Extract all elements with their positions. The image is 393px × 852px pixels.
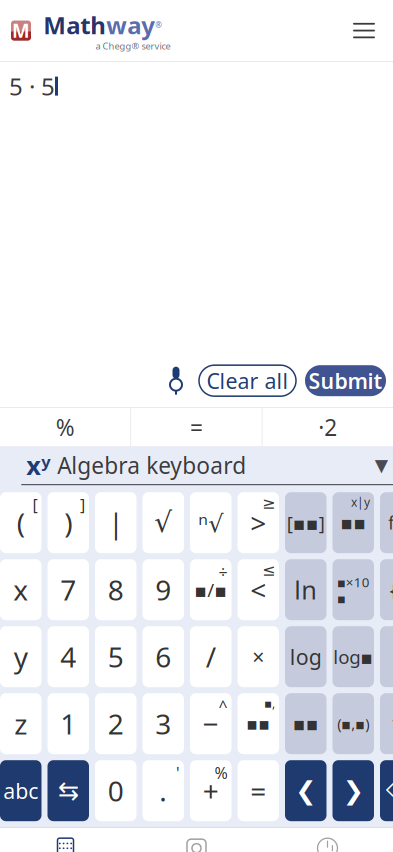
- button[interactable]: Letters: [0, 760, 41, 821]
- staticText: ln: [294, 573, 317, 606]
- button[interactable]: Square root: [142, 492, 184, 553]
- button[interactable]: Fraction: [190, 559, 231, 620]
- staticText: ▪/▪: [194, 577, 227, 602]
- staticText: .: [159, 772, 167, 809]
- staticText: /: [206, 638, 216, 675]
- staticText: Clear all: [206, 366, 288, 395]
- staticText: ®: [155, 19, 162, 30]
- button[interactable]: Delete: [380, 760, 393, 821]
- button[interactable]: 9: [142, 559, 184, 620]
- staticText: ': [176, 762, 180, 783]
- button[interactable]: z: [0, 693, 41, 754]
- button[interactable]: Pi: [380, 693, 393, 754]
- button[interactable]: Less than: [237, 559, 279, 620]
- staticText: 6: [155, 638, 171, 675]
- staticText: ▪×10▪: [337, 573, 370, 606]
- button[interactable]: 7: [47, 559, 89, 620]
- button[interactable]: Parenthesis close: [47, 492, 89, 553]
- button[interactable]: 8: [95, 559, 136, 620]
- button[interactable]: Ordered pair: [332, 693, 374, 754]
- button[interactable]: System of equations: [380, 559, 393, 620]
- button[interactable]: 6: [142, 626, 184, 687]
- staticText: 4: [60, 638, 76, 675]
- button[interactable]: Minus: [190, 693, 231, 754]
- button[interactable]: y: [0, 626, 41, 687]
- button[interactable]: 2: [95, 693, 136, 754]
- button[interactable]: Move right: [332, 760, 374, 821]
- staticText: Algebra keyboard: [57, 450, 246, 480]
- button[interactable]: Decimal point: [142, 760, 184, 821]
- button[interactable]: Scientific notation: [332, 559, 374, 620]
- button[interactable]: Intersection: [380, 626, 393, 687]
- button[interactable]: 1: [47, 693, 89, 754]
- button[interactable]: History: [262, 832, 393, 852]
- button[interactable]: ln: [285, 559, 326, 620]
- staticText: ≤: [262, 561, 275, 579]
- staticText: ⌫: [386, 779, 393, 803]
- staticText: log▪: [333, 644, 373, 669]
- button[interactable]: Move left: [285, 760, 326, 821]
- button[interactable]: Camera: [131, 832, 262, 852]
- staticText: 5 · 5: [9, 70, 55, 102]
- staticText: 9: [155, 571, 171, 608]
- button[interactable]: Nth root: [190, 492, 231, 553]
- button[interactable]: Keyboard: [0, 832, 131, 852]
- staticText: ❮: [295, 776, 316, 805]
- staticText: √: [154, 507, 172, 539]
- button[interactable]: log: [285, 626, 326, 687]
- staticText: ⁿ√: [198, 507, 223, 539]
- staticText: [▪▪]: [287, 510, 325, 535]
- staticText: abc: [3, 776, 38, 805]
- button[interactable]: Function: [380, 492, 393, 553]
- staticText: ▪▪: [293, 713, 319, 734]
- staticText: <: [250, 571, 266, 608]
- button[interactable]: %: [0, 408, 130, 446]
- button[interactable]: Choose keyboard: [367, 451, 393, 479]
- button[interactable]: Voice input: [162, 366, 190, 396]
- staticText: 5: [108, 638, 124, 675]
- button[interactable]: 3: [142, 693, 184, 754]
- button[interactable]: ·2: [263, 408, 393, 446]
- button[interactable]: Clear all: [199, 365, 296, 396]
- staticText: y: [14, 638, 28, 675]
- staticText: 0: [108, 772, 124, 809]
- button[interactable]: Log base: [332, 626, 374, 687]
- staticText: ⇆: [58, 776, 79, 805]
- staticText: =: [190, 412, 203, 442]
- staticText: 8: [108, 571, 124, 608]
- button[interactable]: Plus: [190, 760, 231, 821]
- staticText: |: [108, 504, 123, 541]
- button[interactable]: Parenthesis open: [0, 492, 41, 553]
- button[interactable]: Greater than: [237, 492, 279, 553]
- button[interactable]: 5: [95, 626, 136, 687]
- button[interactable]: Mathway home: [11, 9, 170, 52]
- button[interactable]: Switch keyboard: [47, 760, 89, 821]
- button[interactable]: =: [237, 760, 279, 821]
- staticText: %: [214, 762, 227, 783]
- staticText: [: [32, 494, 37, 515]
- staticText: {▪: [390, 575, 393, 604]
- button[interactable]: x: [0, 559, 41, 620]
- button[interactable]: Divide: [190, 626, 231, 687]
- button[interactable]: Submit: [305, 365, 386, 396]
- button[interactable]: Mixed number: [285, 693, 326, 754]
- button[interactable]: xʸ: [26, 448, 246, 482]
- staticText: log: [290, 642, 322, 671]
- button[interactable]: Absolute value: [95, 492, 136, 553]
- button[interactable]: Menu: [346, 15, 382, 45]
- staticText: ≥: [262, 494, 275, 512]
- button[interactable]: Exponent: [237, 693, 279, 754]
- staticText: 2: [108, 705, 124, 742]
- button[interactable]: 4: [47, 626, 89, 687]
- staticText: 3: [155, 705, 171, 742]
- staticText: Submit: [308, 366, 382, 395]
- staticText: ▼: [375, 455, 388, 475]
- staticText: xʸ: [26, 448, 50, 482]
- button[interactable]: 0: [95, 760, 136, 821]
- button[interactable]: Multiply: [237, 626, 279, 687]
- button[interactable]: Fraction template: [332, 492, 374, 553]
- button[interactable]: =: [131, 408, 262, 446]
- button[interactable]: Matrix: [285, 492, 326, 553]
